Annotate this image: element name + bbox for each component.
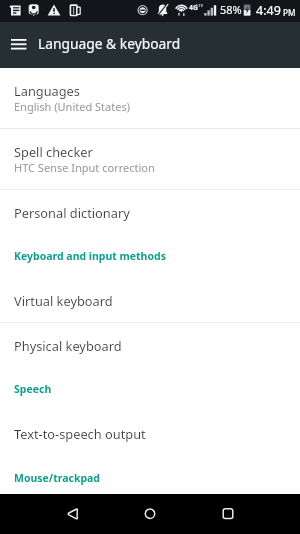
staticText: Text-to-speech output [14,425,146,442]
staticText: Spell checker [14,143,93,160]
button[interactable]: Text-to-speech output [0,411,300,455]
staticText: 4:49 [256,2,281,19]
staticText: HTC Sense Input correction [14,160,155,175]
staticText: 4G [189,3,198,12]
button[interactable]: Back [0,494,100,534]
staticText: Mouse/trackpad [14,471,101,485]
staticText: Keyboard and input methods [14,249,166,263]
button[interactable]: Physical keyboard [0,323,300,367]
button[interactable]: Open navigation menu [3,22,35,68]
staticText: 58% [220,2,242,17]
staticText: English (United States) [14,99,130,114]
button[interactable]: Languages [0,68,300,128]
button[interactable]: Virtual keyboard [0,278,300,322]
button[interactable]: Personal dictionary [0,190,300,234]
button[interactable]: Recent apps [200,494,300,534]
staticText: Languages [14,82,80,99]
staticText: Physical keyboard [14,337,122,354]
staticText: Speech [14,382,52,396]
button[interactable]: Spell checker [0,129,300,189]
staticText: Personal dictionary [14,204,130,221]
staticText: PM [283,7,296,18]
staticText: LTE [196,3,204,9]
button[interactable]: Home [100,494,200,534]
staticText: Virtual keyboard [14,292,113,309]
staticText: Language & keyboard [38,34,181,53]
